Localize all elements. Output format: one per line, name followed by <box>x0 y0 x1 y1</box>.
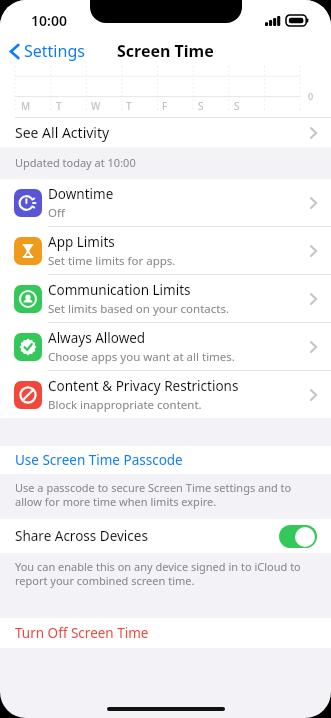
staticText: Set limits based on your contacts. <box>48 301 229 317</box>
staticText: Set time limits for apps. <box>48 253 176 269</box>
button[interactable]: Content & Privacy Restrictions <box>0 371 331 418</box>
button[interactable]: Communication Limits <box>0 275 331 322</box>
button[interactable]: Downtime <box>0 179 331 226</box>
staticText: 0 <box>308 90 314 102</box>
staticText: Use Screen Time Passcode <box>15 451 183 469</box>
staticText: F <box>162 99 168 113</box>
staticText: Updated today at 10:00 <box>15 155 136 170</box>
staticText: Always Allowed <box>48 329 146 347</box>
staticText: Content & Privacy Restrictions <box>48 377 239 395</box>
button[interactable]: Use Screen Time Passcode <box>0 446 331 474</box>
staticText: Choose apps you want at all times. <box>48 349 235 365</box>
button[interactable]: App Limits <box>0 227 331 274</box>
staticText: W <box>91 99 101 113</box>
staticText: See All Activity <box>15 123 110 142</box>
staticText: S <box>234 99 240 113</box>
staticText: Share Across Devices <box>15 527 148 545</box>
staticText: T <box>56 99 62 113</box>
button[interactable]: See All Activity <box>0 118 331 147</box>
button[interactable]: Turn Off Screen Time <box>0 618 331 648</box>
button[interactable]: Share Across Devices <box>0 519 331 553</box>
staticText: Communication Limits <box>48 281 191 299</box>
staticText: Off <box>48 205 65 221</box>
button[interactable]: Settings <box>0 36 93 66</box>
staticText: You can enable this on any device signed… <box>15 559 313 588</box>
staticText: T <box>126 99 132 113</box>
staticText: S <box>198 99 204 113</box>
staticText: Screen Time <box>117 40 214 62</box>
staticText: Turn Off Screen Time <box>15 624 149 642</box>
staticText: App Limits <box>48 233 115 251</box>
staticText: 10:00 <box>31 11 67 30</box>
staticText: M <box>21 99 31 113</box>
staticText: Block inappropriate content. <box>48 397 202 413</box>
other: Share Across Devices toggle, on <box>279 525 317 548</box>
staticText: Settings <box>24 40 85 62</box>
staticText: Downtime <box>48 185 114 203</box>
staticText: Use a passcode to secure Screen Time set… <box>15 480 313 509</box>
button[interactable]: Always Allowed <box>0 323 331 370</box>
